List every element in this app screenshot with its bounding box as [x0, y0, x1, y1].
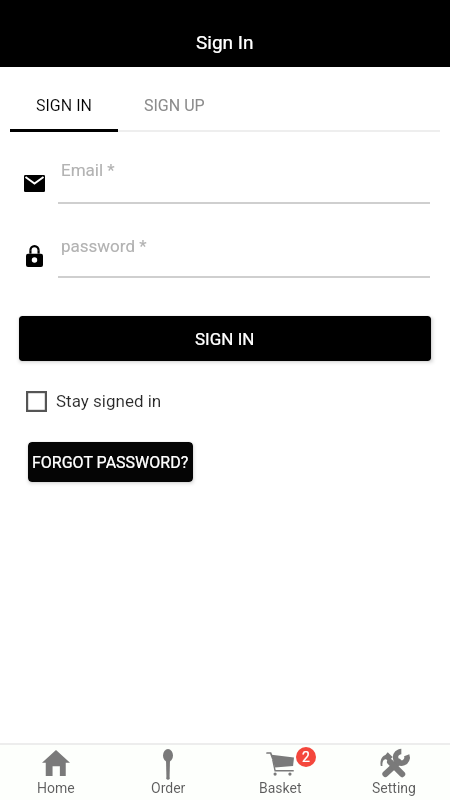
button[interactable]: SIGN IN: [19, 316, 431, 361]
staticText: Stay signed in: [56, 391, 162, 411]
button[interactable]: Setting: [337, 745, 450, 796]
staticText: 2: [302, 749, 310, 765]
staticText: SIGN IN: [36, 96, 92, 115]
staticText: Email *: [61, 160, 115, 180]
staticText: SIGN UP: [144, 96, 205, 115]
button[interactable]: SIGN IN: [10, 82, 118, 127]
staticText: Sign In: [196, 31, 254, 53]
staticText: Home: [37, 780, 75, 796]
button[interactable]: Home: [0, 745, 112, 796]
staticText: Setting: [372, 780, 416, 796]
staticText: FORGOT PASSWORD?: [32, 453, 189, 472]
staticText: Order: [151, 780, 186, 796]
button[interactable]: 2: [224, 745, 337, 796]
button[interactable]: FORGOT PASSWORD?: [28, 442, 193, 482]
staticText: password *: [61, 236, 147, 256]
staticText: SIGN IN: [195, 329, 255, 349]
button[interactable]: Stay signed in: [26, 390, 162, 412]
staticText: Basket: [259, 780, 302, 796]
button[interactable]: Order: [112, 745, 224, 796]
button[interactable]: SIGN UP: [118, 82, 230, 127]
